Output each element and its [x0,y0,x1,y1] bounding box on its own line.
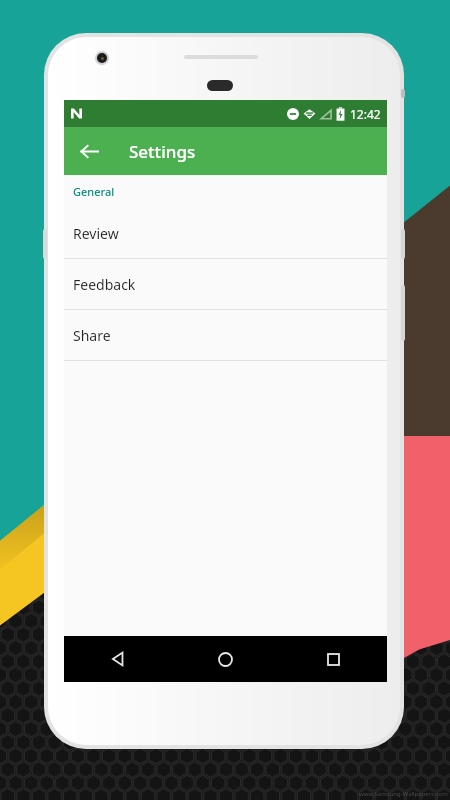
button[interactable]: Home [171,636,279,682]
button[interactable]: Feedback [64,259,387,309]
button[interactable]: Recent apps [279,636,387,682]
staticText: Share [73,326,111,345]
staticText: Settings [129,140,196,163]
staticText: General [73,184,115,199]
staticText: 12:42 [350,106,381,122]
staticText: Feedback [73,275,136,294]
staticText: Review [73,224,119,243]
staticText: www.Samsung-Wallpapers.com [359,790,448,798]
button[interactable]: Review [64,208,387,258]
button[interactable]: Back [73,135,105,167]
button[interactable]: Back [64,636,171,682]
button[interactable]: Share [64,310,387,360]
